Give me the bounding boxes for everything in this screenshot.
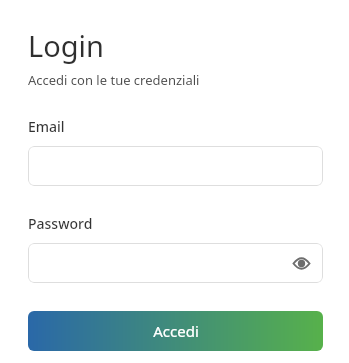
staticText: Password [28, 214, 93, 233]
button[interactable]: Show password [287, 249, 315, 277]
staticText: Login [28, 26, 104, 65]
button[interactable]: Accedi [28, 311, 323, 351]
staticText: Accedi [153, 321, 199, 341]
button[interactable]: Email input field [28, 146, 323, 186]
staticText: Accedi con le tue credenziali [28, 71, 200, 89]
staticText: Email [28, 117, 65, 136]
button[interactable]: Password input field [28, 243, 323, 283]
